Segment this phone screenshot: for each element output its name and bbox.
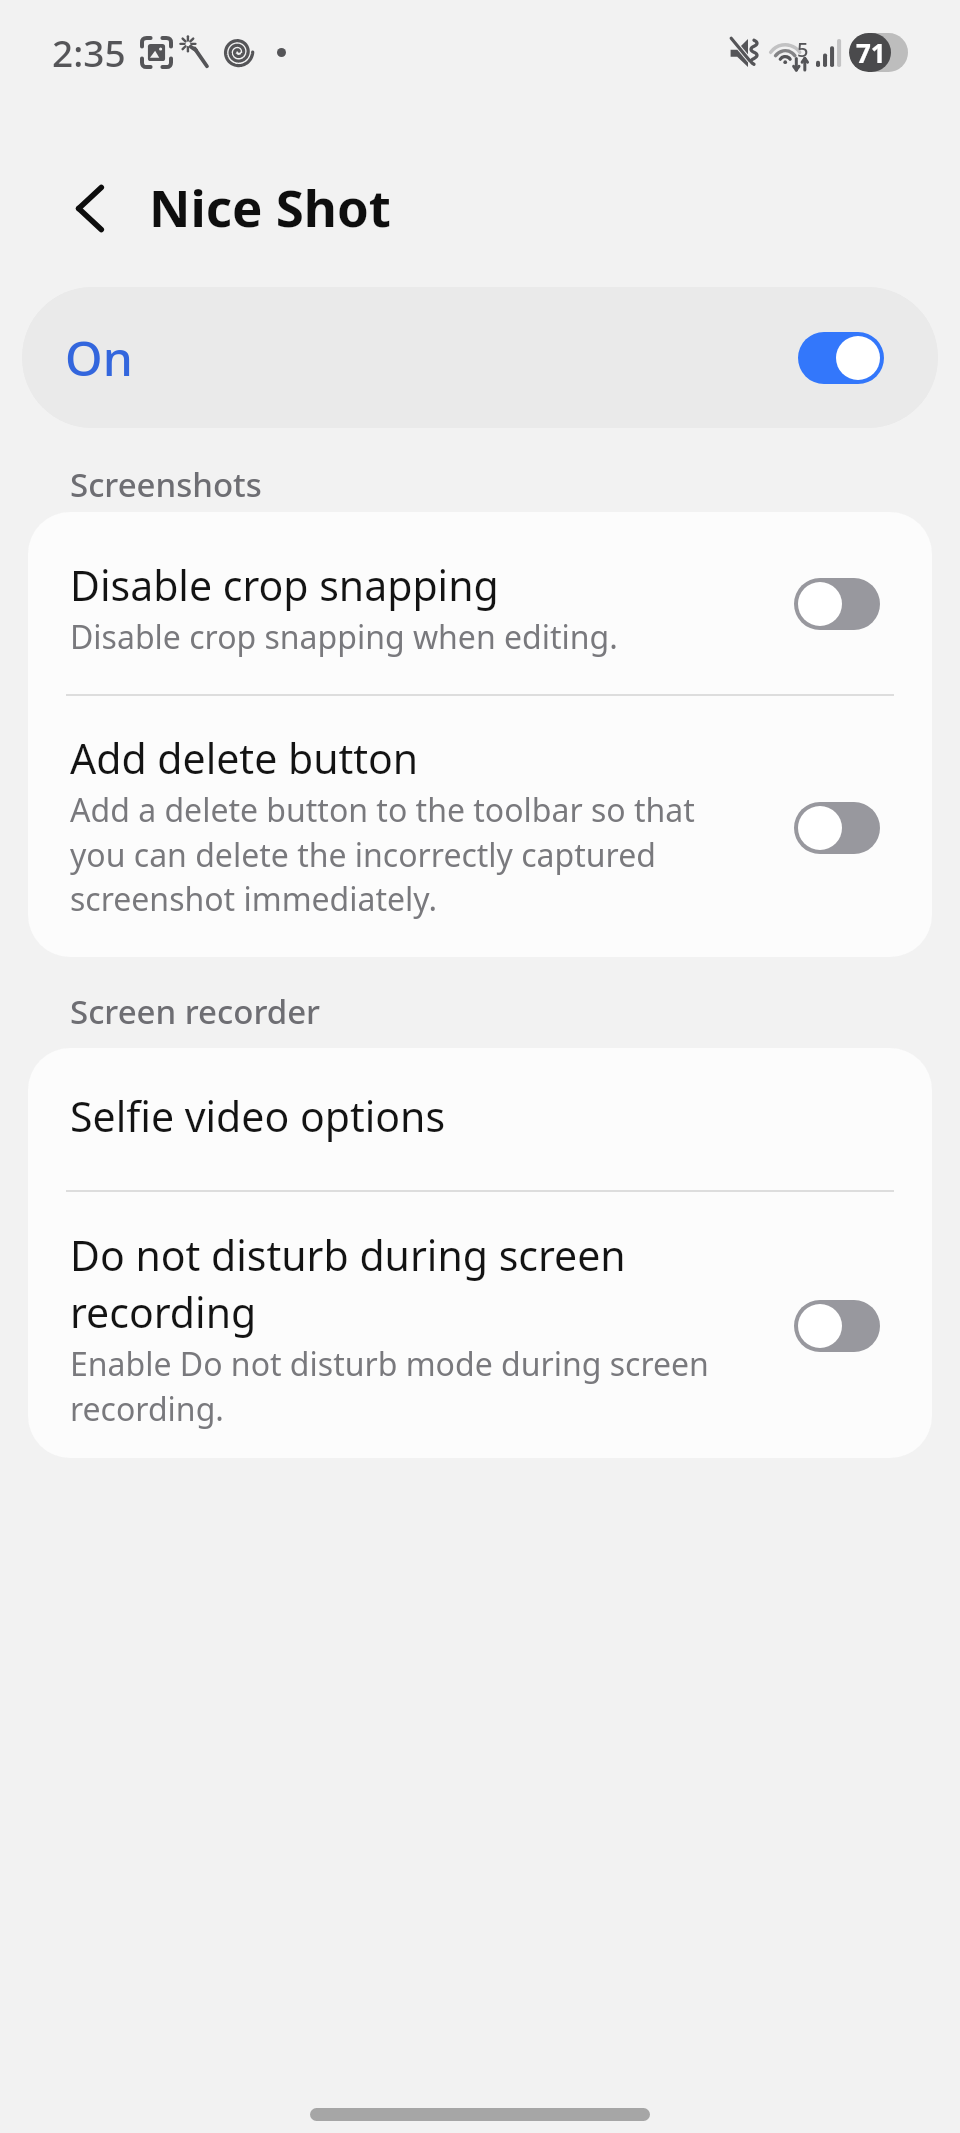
staticText: 2:35 — [52, 27, 126, 77]
staticText: Disable crop snapping — [70, 557, 499, 613]
staticText: Add a delete button to the toolbar so th… — [70, 788, 729, 920]
button[interactable]: Add delete button — [28, 696, 932, 957]
staticText: Add delete button — [70, 730, 419, 786]
button[interactable]: Disabled switch — [794, 578, 880, 630]
button[interactable]: On — [22, 287, 938, 428]
button[interactable]: Do not disturb during screen recording — [28, 1192, 932, 1458]
staticText: On — [65, 325, 133, 390]
staticText: Selfie video options — [70, 1088, 446, 1144]
staticText: Nice Shot — [149, 172, 391, 241]
staticText: 5 — [797, 36, 809, 63]
button[interactable]: Selfie video options — [28, 1048, 932, 1190]
staticText: 71 — [856, 35, 886, 70]
staticText: Screen recorder — [70, 989, 321, 1034]
staticText: Enable Do not disturb mode during screen… — [70, 1342, 729, 1430]
button[interactable]: Disable crop snapping — [28, 512, 932, 694]
button[interactable]: Disabled switch — [794, 1300, 880, 1352]
staticText: Do not disturb during screen recording — [70, 1227, 729, 1340]
staticText: Screenshots — [70, 462, 262, 507]
staticText: Disable crop snapping when editing. — [70, 615, 618, 659]
button[interactable]: Disabled switch — [794, 802, 880, 854]
button[interactable]: Enabled switch — [798, 332, 884, 384]
button[interactable]: Back — [47, 166, 131, 250]
